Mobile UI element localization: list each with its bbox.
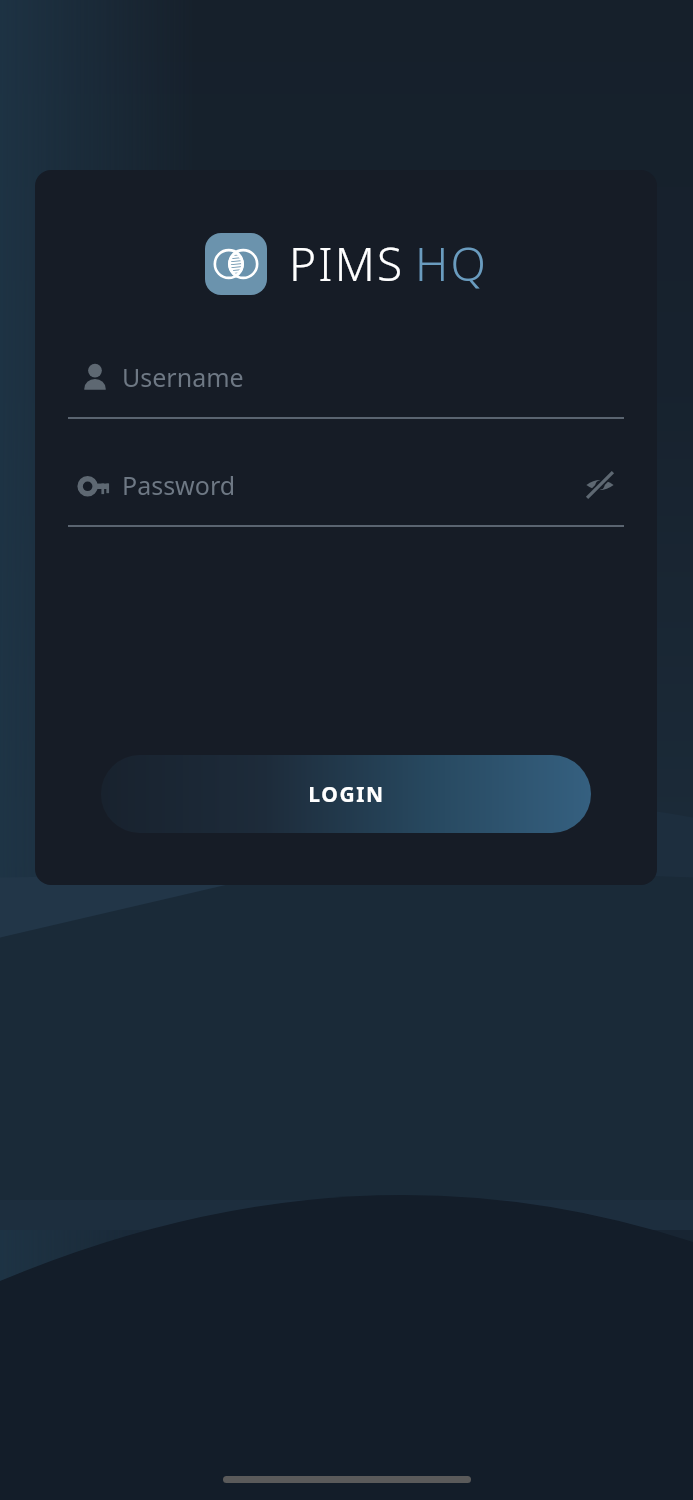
staticText: Username <box>122 360 244 394</box>
button[interactable]: LOGIN <box>101 755 591 833</box>
staticText: HQ <box>415 232 488 295</box>
staticText: Password <box>122 468 236 502</box>
button[interactable]: Username <box>68 353 624 401</box>
staticText: LOGIN <box>308 780 385 809</box>
staticText: PIMS <box>289 232 405 295</box>
button[interactable]: Show password <box>576 461 624 509</box>
button[interactable]: Password <box>68 461 624 509</box>
